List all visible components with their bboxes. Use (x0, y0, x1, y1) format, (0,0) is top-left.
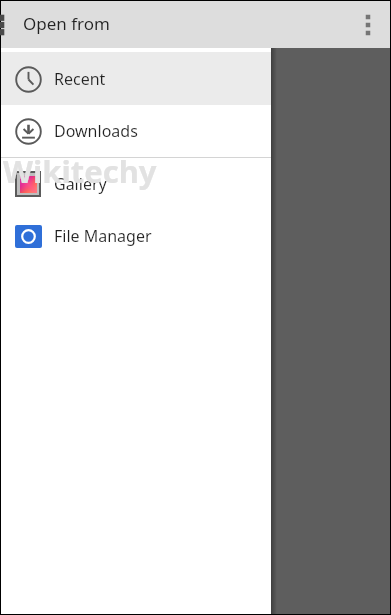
staticText: Gallery (54, 173, 107, 195)
button[interactable]: Recent (1, 52, 271, 105)
button[interactable]: Downloads (1, 105, 271, 157)
button[interactable]: Gallery (1, 158, 271, 210)
staticText: Wikitechy (3, 150, 157, 192)
staticText: File Manager (54, 225, 152, 247)
staticText: Downloads (54, 120, 138, 142)
staticText: Recent (54, 68, 106, 90)
button[interactable]: Menu (0, 13, 8, 37)
staticText: Open from (23, 12, 110, 35)
button[interactable]: More options (346, 1, 390, 48)
button[interactable]: File Manager (1, 210, 271, 262)
